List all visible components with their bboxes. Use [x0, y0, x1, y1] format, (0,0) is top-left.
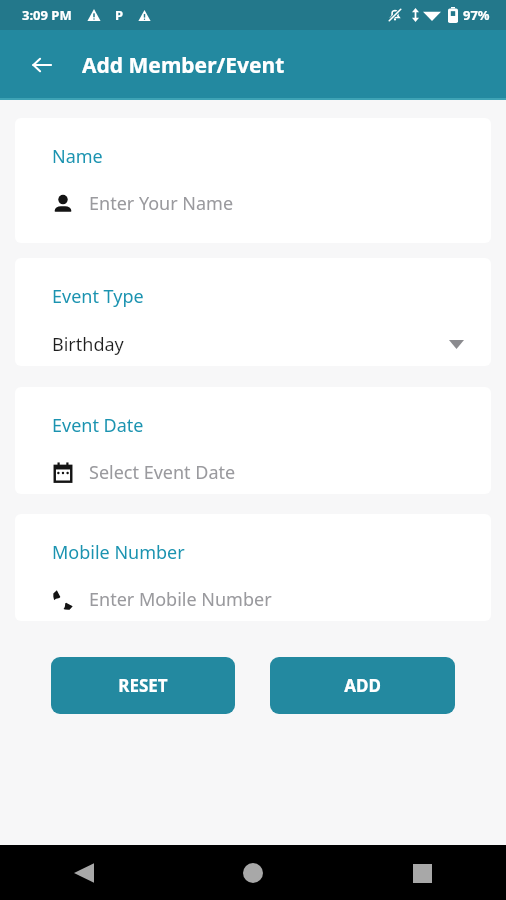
button[interactable]: Recent apps — [398, 849, 446, 897]
staticText: Select Event Date — [89, 460, 236, 485]
button[interactable]: Back — [60, 849, 108, 897]
staticText: RESET — [118, 674, 168, 697]
staticText: Birthday — [52, 332, 124, 357]
staticText: P — [115, 6, 124, 24]
button[interactable]: Name — [15, 118, 491, 243]
button[interactable]: ADD — [270, 657, 455, 714]
staticText: Event Date — [52, 413, 144, 438]
button[interactable]: Open event type dropdown — [443, 331, 469, 357]
staticText: Add Member/Event — [82, 51, 285, 80]
staticText: Event Type — [52, 284, 144, 309]
staticText: Mobile Number — [52, 540, 185, 565]
button[interactable]: Event Type — [15, 258, 491, 366]
staticText: 3:09 PM — [22, 6, 72, 24]
staticText: 97% — [463, 6, 490, 24]
button[interactable]: Event Date — [15, 387, 491, 494]
staticText: Enter Mobile Number — [89, 587, 272, 612]
button[interactable]: Home — [229, 849, 277, 897]
button[interactable]: Back — [22, 45, 62, 85]
staticText: Enter Your Name — [89, 191, 234, 216]
staticText: Name — [52, 144, 103, 169]
staticText: ADD — [344, 674, 381, 697]
button[interactable]: RESET — [51, 657, 235, 714]
button[interactable]: Mobile Number — [15, 514, 491, 621]
